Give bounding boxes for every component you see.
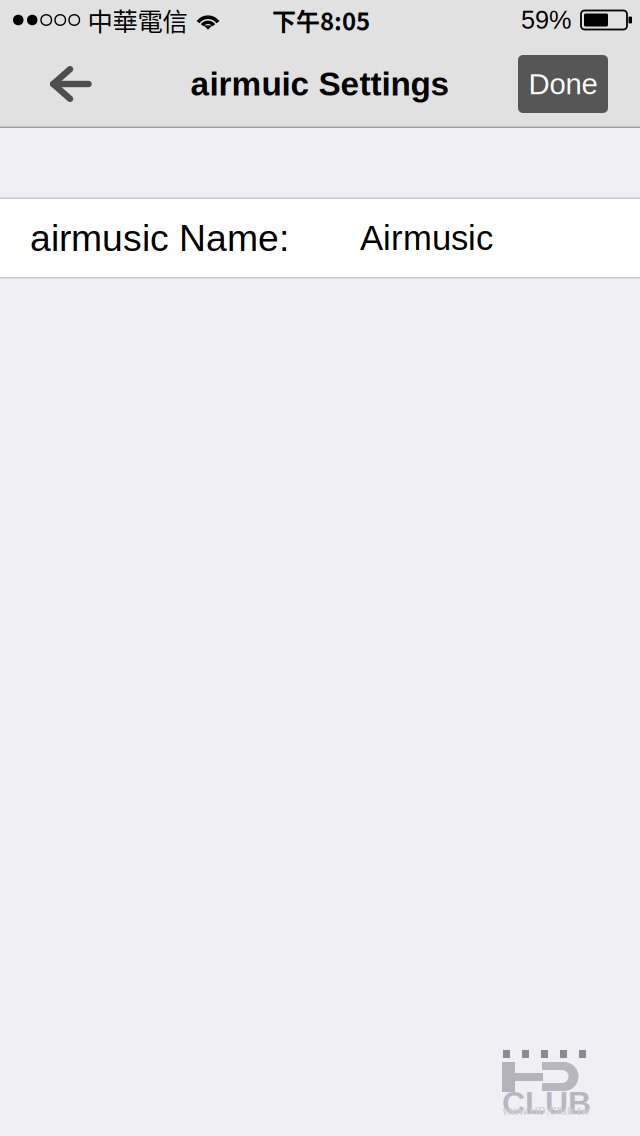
- staticText: 下午8:05: [272, 3, 370, 37]
- staticText: airmuic Settings: [190, 65, 449, 103]
- staticText: 59%: [521, 6, 572, 34]
- staticText: 中華電信: [87, 2, 187, 38]
- staticText: www.HD.Club.tw: [503, 1105, 589, 1117]
- button[interactable]: Done: [518, 55, 608, 113]
- staticText: Airmusic: [360, 219, 493, 257]
- button[interactable]: Back: [0, 40, 142, 128]
- staticText: CLUB: [502, 1085, 591, 1121]
- staticText: airmusic Name:: [30, 217, 289, 259]
- staticText: Done: [528, 68, 597, 100]
